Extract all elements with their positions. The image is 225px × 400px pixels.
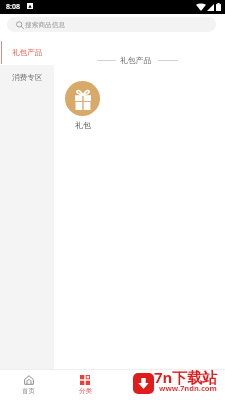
button[interactable]: 分类 <box>57 369 113 400</box>
staticText: 首页 <box>22 387 35 395</box>
staticText: 消费专区 <box>12 73 43 83</box>
staticText: 礼包 <box>75 120 91 130</box>
staticText: 礼包产品 <box>120 55 152 65</box>
button[interactable]: 消费专区 <box>0 65 54 90</box>
button[interactable]: 搜索商品信息 <box>7 17 216 32</box>
button[interactable]: 礼包产品 <box>0 40 54 65</box>
button[interactable]: 首页 <box>0 369 57 400</box>
staticText: 7n下载站 <box>154 367 218 387</box>
staticText: 礼包产品 <box>12 48 43 58</box>
staticText: 分类 <box>79 387 92 395</box>
staticText: www.7ndn.com <box>159 383 217 393</box>
button[interactable]: 礼包 <box>55 81 110 130</box>
staticText: 8:08 <box>6 2 20 12</box>
staticText: 搜索商品信息 <box>25 21 66 29</box>
